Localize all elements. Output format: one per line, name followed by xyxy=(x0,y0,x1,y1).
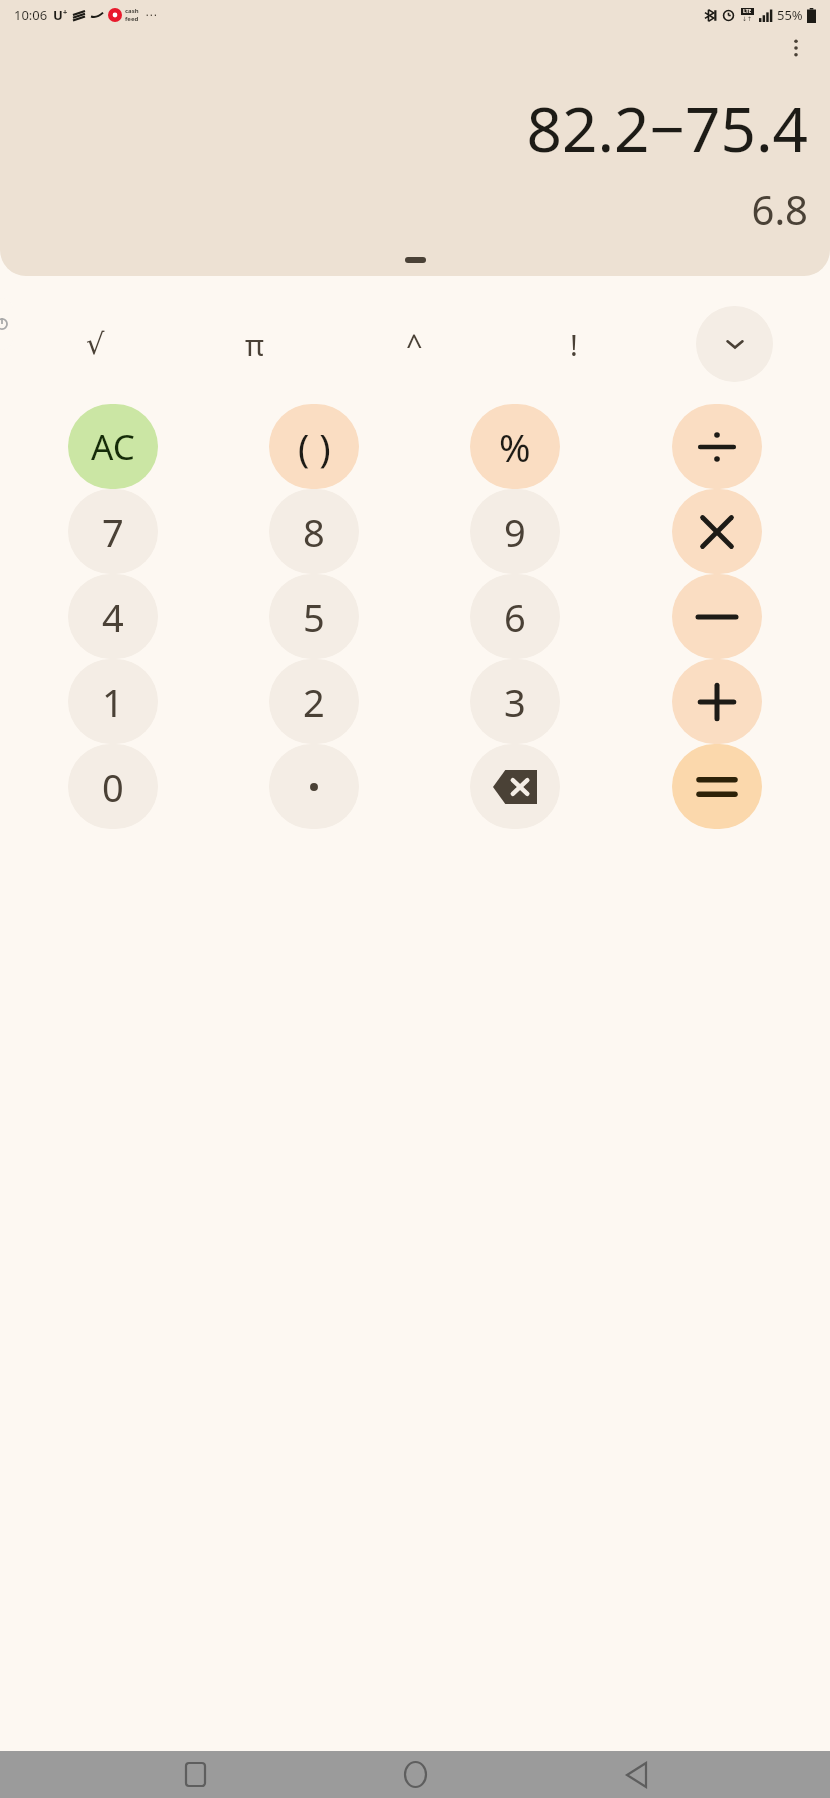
staticText: 0 xyxy=(102,761,124,813)
staticText: 10:06 xyxy=(14,6,48,24)
staticText: cash xyxy=(125,7,139,15)
staticText: 3 xyxy=(504,676,526,728)
button[interactable]: Home xyxy=(389,1751,441,1798)
button[interactable]: 9 xyxy=(470,489,560,574)
button[interactable] xyxy=(672,574,762,659)
staticText: ↓↑ xyxy=(742,15,753,22)
button[interactable]: More options xyxy=(772,24,820,72)
button[interactable]: AC xyxy=(68,404,158,489)
staticText: feed xyxy=(125,15,139,23)
button[interactable]: Back xyxy=(610,1751,662,1798)
button[interactable]: ^ xyxy=(334,306,494,382)
staticText: ⋯ xyxy=(145,8,157,22)
button[interactable]: % xyxy=(470,404,560,489)
button[interactable]: 4 xyxy=(68,574,158,659)
staticText: 55% xyxy=(777,6,803,24)
staticText: 8 xyxy=(303,506,325,558)
button[interactable] xyxy=(672,404,762,489)
button[interactable] xyxy=(672,744,762,829)
button[interactable]: √ xyxy=(16,306,175,382)
staticText: √ xyxy=(86,327,105,361)
button[interactable]: π xyxy=(175,306,334,382)
staticText: 6 xyxy=(504,591,526,643)
button[interactable]: 8 xyxy=(269,489,359,574)
staticText: 5 xyxy=(303,591,325,643)
staticText: π xyxy=(245,325,264,364)
staticText: AC xyxy=(91,423,135,471)
button[interactable]: 7 xyxy=(68,489,158,574)
button[interactable]: Power xyxy=(0,298,13,350)
staticText: 2 xyxy=(303,676,325,728)
staticText: % xyxy=(499,421,531,473)
button[interactable]: Backspace xyxy=(470,744,560,829)
staticText: ! xyxy=(570,325,578,364)
staticText: 4 xyxy=(102,591,124,643)
button[interactable]: 0 xyxy=(68,744,158,829)
button[interactable]: 1 xyxy=(68,659,158,744)
button[interactable]: Recents xyxy=(169,1751,221,1798)
staticText: LTE xyxy=(743,8,752,15)
button[interactable]: ( ) xyxy=(269,404,359,489)
button[interactable]: 3 xyxy=(470,659,560,744)
staticText: U⁺ xyxy=(53,6,68,24)
button[interactable] xyxy=(672,659,762,744)
staticText: 9 xyxy=(504,506,526,558)
staticText: ( ) xyxy=(298,421,331,473)
button[interactable] xyxy=(672,489,762,574)
staticText: 82.2−75.4 xyxy=(526,86,808,170)
button[interactable]: ! xyxy=(494,306,654,382)
staticText: ^ xyxy=(406,325,423,364)
button[interactable]: 2 xyxy=(269,659,359,744)
button[interactable] xyxy=(269,744,359,829)
button[interactable]: 6 xyxy=(470,574,560,659)
button[interactable]: 5 xyxy=(269,574,359,659)
staticText: 7 xyxy=(102,506,124,558)
staticText: 6.8 xyxy=(751,182,808,236)
staticText: 1 xyxy=(102,676,124,728)
button[interactable]: Expand xyxy=(696,306,773,382)
